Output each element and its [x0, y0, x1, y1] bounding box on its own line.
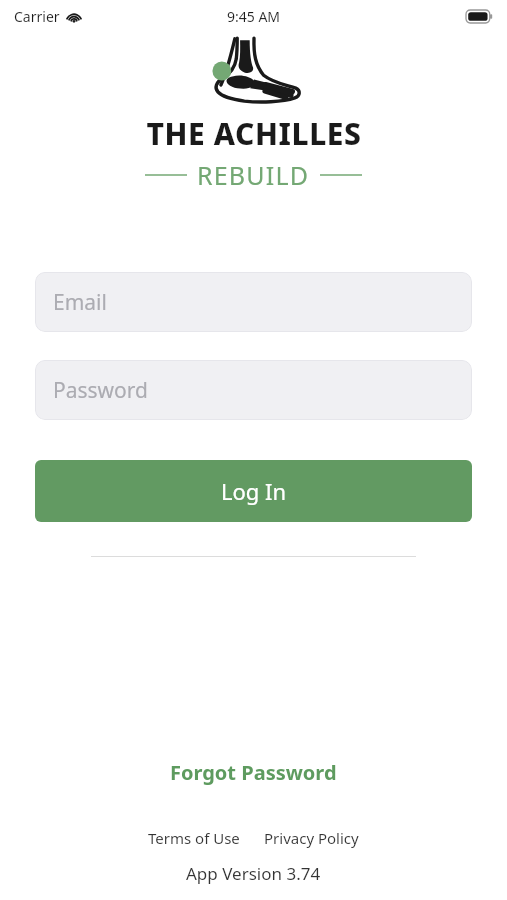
staticText: Password	[53, 376, 148, 405]
staticText: Log In	[221, 476, 287, 506]
staticText: 9:45 AM	[227, 7, 281, 26]
staticText: Terms of Use	[148, 828, 240, 848]
button[interactable]: Password	[35, 360, 472, 420]
button[interactable]: Log In	[35, 460, 472, 522]
staticText: Carrier	[14, 7, 60, 26]
button[interactable]: Terms of Use	[144, 824, 244, 852]
staticText: Forgot Password	[170, 759, 337, 786]
staticText: THE ACHILLES	[146, 113, 362, 154]
button[interactable]: Email	[35, 272, 472, 332]
staticText: App Version 3.74	[186, 862, 321, 885]
staticText: Email	[53, 288, 107, 317]
staticText: Privacy Policy	[264, 828, 359, 848]
button[interactable]: Forgot Password	[160, 753, 347, 792]
staticText: REBUILD	[197, 158, 310, 192]
button[interactable]: Privacy Policy	[260, 824, 363, 852]
